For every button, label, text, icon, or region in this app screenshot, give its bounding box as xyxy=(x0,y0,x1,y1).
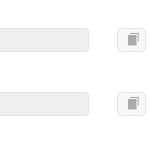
button[interactable] xyxy=(0,28,89,52)
button[interactable]: Copy xyxy=(117,28,146,52)
button[interactable] xyxy=(0,92,89,116)
button[interactable]: Copy xyxy=(117,92,146,116)
